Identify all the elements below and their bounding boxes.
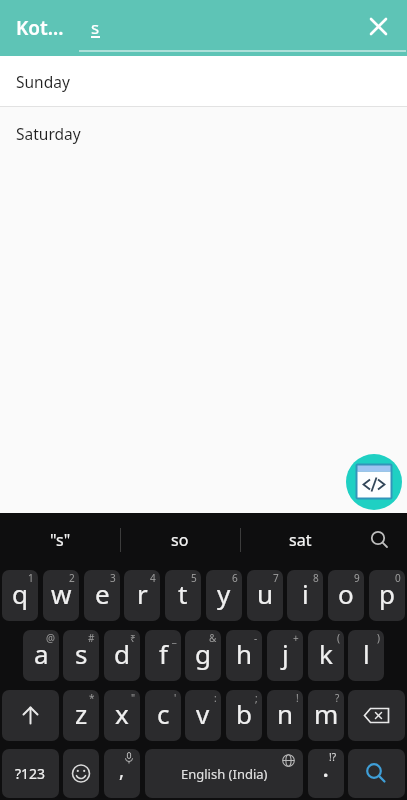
staticText: ): [377, 631, 380, 645]
staticText: ?: [335, 691, 340, 705]
staticText: (: [337, 631, 340, 645]
staticText: z: [75, 696, 88, 731]
staticText: Kot…: [16, 15, 64, 41]
staticText: ": [131, 691, 136, 705]
staticText: _: [172, 631, 177, 645]
staticText: :: [214, 691, 217, 705]
staticText: -: [254, 631, 258, 645]
staticText: .: [323, 757, 329, 783]
staticText: o: [338, 576, 354, 611]
staticText: v: [196, 696, 210, 731]
staticText: x: [115, 696, 129, 731]
staticText: f: [159, 636, 168, 671]
staticText: 3: [110, 571, 116, 585]
staticText: !: [296, 691, 299, 705]
staticText: u: [257, 576, 274, 611]
staticText: sat: [289, 529, 312, 551]
staticText: q: [12, 576, 28, 611]
staticText: a: [34, 636, 49, 671]
staticText: @: [46, 631, 55, 645]
staticText: 7: [273, 571, 279, 585]
staticText: w: [51, 576, 72, 611]
staticText: 9: [354, 571, 360, 585]
staticText: !?: [329, 750, 337, 764]
staticText: ,: [119, 757, 125, 783]
staticText: h: [236, 636, 253, 671]
staticText: 4: [150, 571, 156, 585]
staticText: 0: [395, 571, 401, 585]
staticText: ;: [255, 691, 258, 705]
staticText: t: [178, 576, 188, 611]
staticText: ?123: [15, 764, 46, 783]
staticText: 8: [313, 571, 319, 585]
staticText: d: [114, 636, 130, 671]
staticText: *: [89, 691, 95, 705]
staticText: k: [319, 636, 333, 671]
staticText: Sunday: [16, 71, 70, 92]
staticText: "s": [50, 529, 71, 551]
staticText: i: [302, 576, 309, 611]
staticText: so: [171, 529, 189, 551]
staticText: ₹: [130, 631, 136, 645]
staticText: English (India): [181, 765, 268, 783]
staticText: p: [379, 576, 395, 611]
staticText: c: [157, 696, 170, 731]
staticText: n: [277, 696, 294, 731]
staticText: 1: [28, 571, 34, 585]
staticText: &: [209, 631, 217, 645]
staticText: r: [137, 576, 148, 611]
staticText: s: [75, 636, 88, 671]
staticText: #: [88, 631, 95, 645]
staticText: b: [236, 696, 252, 731]
staticText: l: [363, 636, 370, 671]
staticText: g: [195, 636, 211, 671]
staticText: j: [282, 636, 289, 671]
staticText: ': [174, 691, 177, 705]
staticText: s: [91, 16, 100, 39]
staticText: Saturday: [16, 123, 81, 144]
staticText: 2: [69, 571, 75, 585]
staticText: m: [314, 696, 339, 731]
staticText: +: [293, 631, 299, 645]
staticText: 5: [191, 571, 197, 585]
staticText: 6: [232, 571, 238, 585]
staticText: e: [95, 576, 110, 611]
staticText: y: [217, 576, 231, 611]
